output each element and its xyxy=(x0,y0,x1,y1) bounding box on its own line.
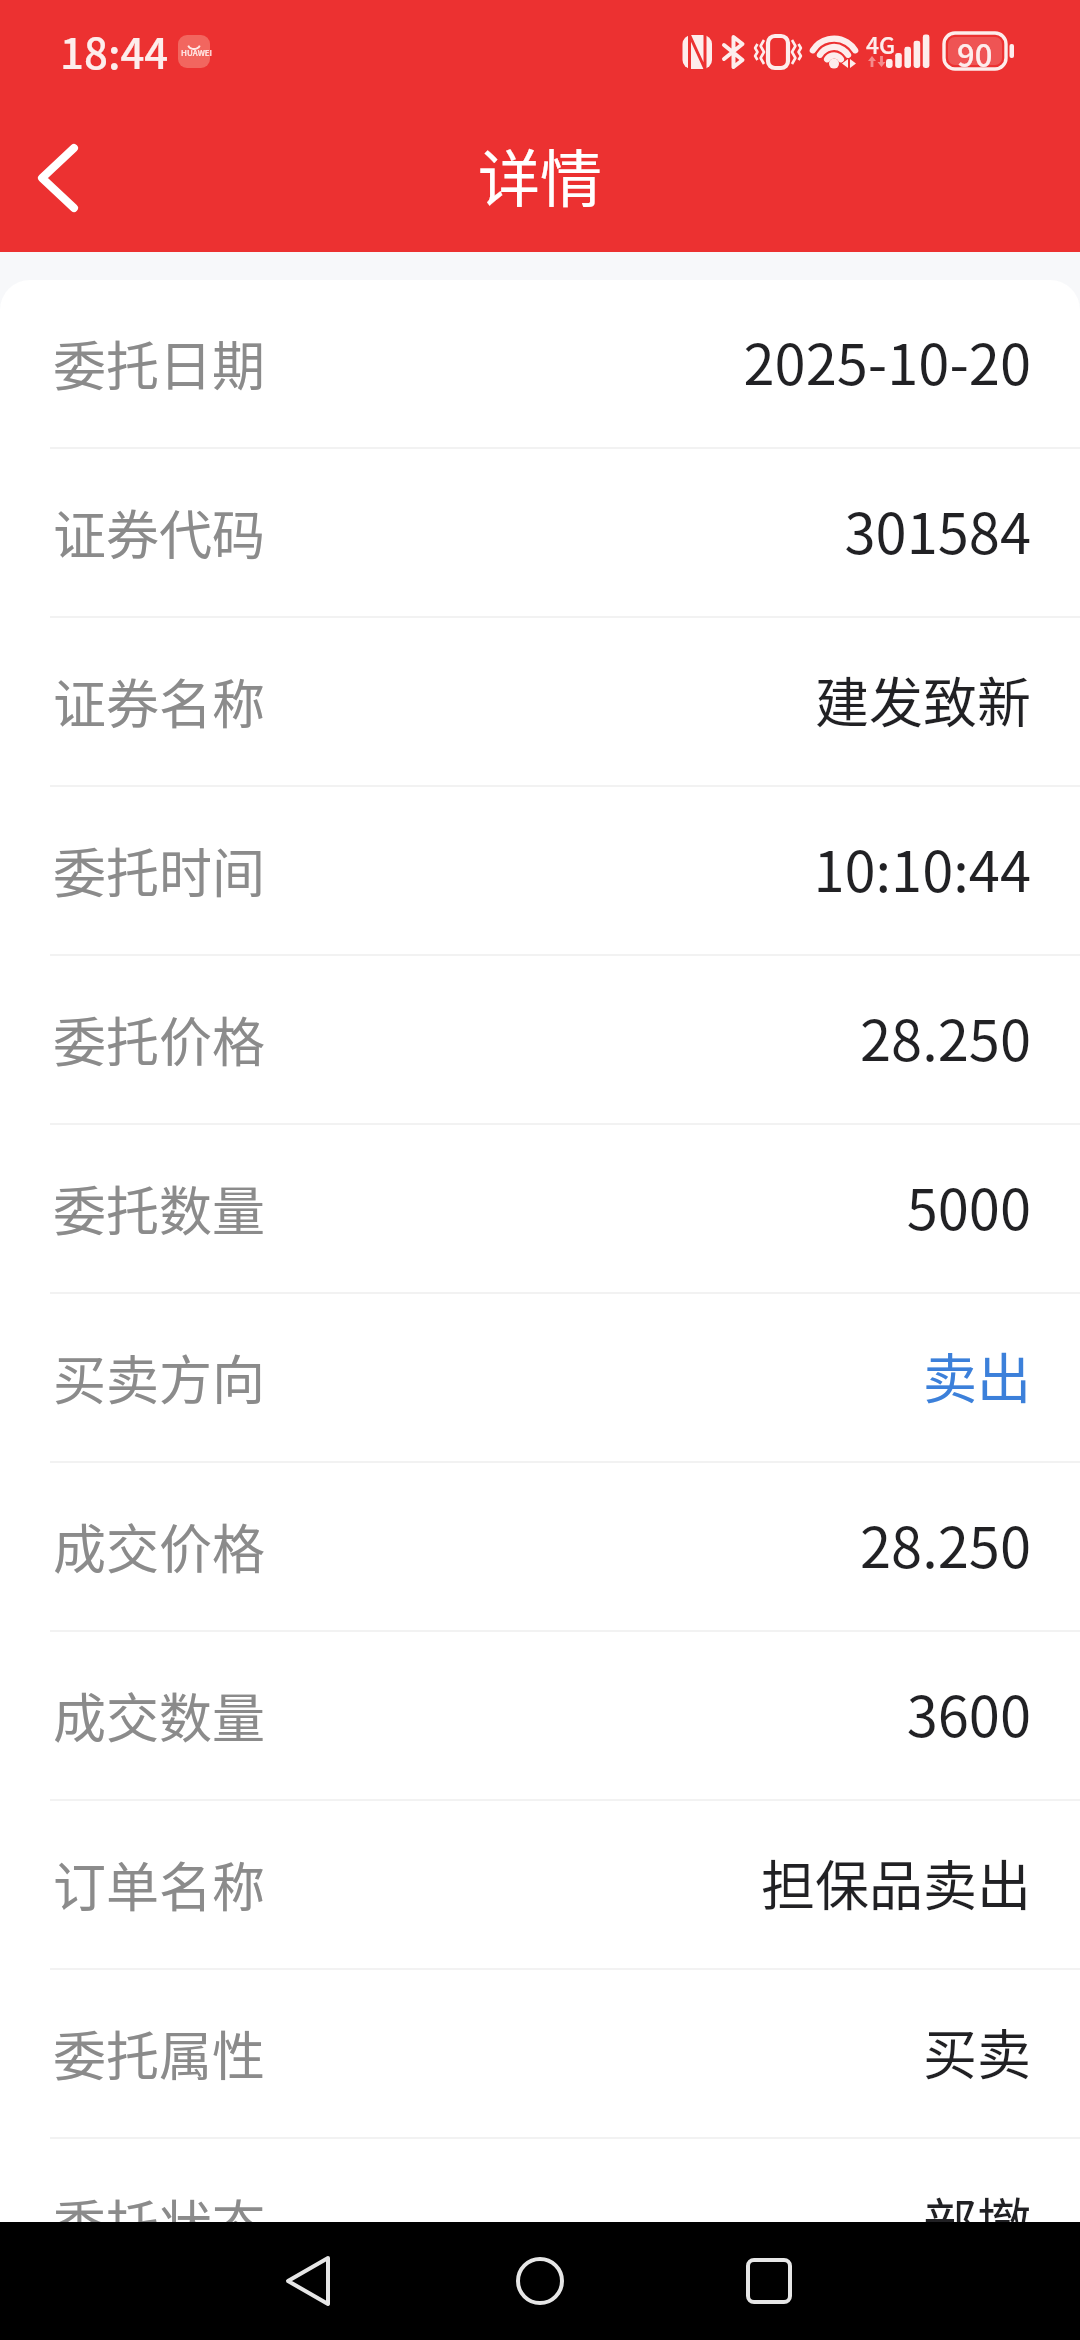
staticText: 买卖 xyxy=(923,2012,1031,2090)
staticText: 委托数量 xyxy=(53,1170,265,1247)
staticText: 4G xyxy=(866,27,896,60)
staticText: 成交价格 xyxy=(53,1508,265,1585)
staticText: 2025-10-20 xyxy=(743,320,1031,401)
button[interactable]: 订单名称 xyxy=(0,1801,1080,1970)
staticText: 委托日期 xyxy=(53,325,265,402)
staticText: 证券代码 xyxy=(53,494,265,571)
button[interactable]: 委托数量 xyxy=(0,1125,1080,1294)
button[interactable]: Home xyxy=(480,2222,600,2340)
button[interactable]: 证券名称 xyxy=(0,618,1080,787)
staticText: 买卖方向 xyxy=(53,1339,265,1416)
staticText: 部撤 xyxy=(923,2181,1031,2222)
button[interactable]: 成交价格 xyxy=(0,1463,1080,1632)
button[interactable]: 委托日期 xyxy=(0,280,1080,449)
button[interactable]: Recent apps xyxy=(709,2222,829,2340)
staticText: 担保品卖出 xyxy=(761,1843,1031,1921)
staticText: 301584 xyxy=(844,489,1031,570)
staticText: 订单名称 xyxy=(53,1846,265,1923)
staticText: 卖出 xyxy=(923,1336,1031,1414)
button[interactable]: 委托时间 xyxy=(0,787,1080,956)
staticText: 成交数量 xyxy=(53,1677,265,1754)
staticText: 10:10:44 xyxy=(813,827,1031,908)
staticText: 委托属性 xyxy=(53,2015,265,2092)
button[interactable]: 委托价格 xyxy=(0,956,1080,1125)
staticText: 28.250 xyxy=(860,996,1031,1077)
staticText: 委托状态 xyxy=(53,2184,265,2222)
staticText: 证券名称 xyxy=(53,663,265,740)
button[interactable]: 委托属性 xyxy=(0,1970,1080,2139)
staticText: 18:44 xyxy=(60,20,169,81)
button[interactable]: 证券代码 xyxy=(0,449,1080,618)
staticText: 建发致新 xyxy=(815,660,1031,738)
staticText: 90 xyxy=(957,31,993,76)
button[interactable]: Back xyxy=(248,2222,368,2340)
staticText: 5000 xyxy=(906,1165,1031,1246)
staticText: 3600 xyxy=(906,1672,1031,1753)
button[interactable]: 成交数量 xyxy=(0,1632,1080,1801)
staticText: HUAWEI xyxy=(181,47,213,59)
staticText: 详情 xyxy=(478,130,603,220)
staticText: 28.250 xyxy=(860,1503,1031,1584)
staticText: 委托价格 xyxy=(53,1001,265,1078)
staticText: 委托时间 xyxy=(53,832,265,909)
button[interactable]: 委托状态 xyxy=(0,2139,1080,2222)
button[interactable]: 买卖方向 xyxy=(0,1294,1080,1463)
button[interactable]: Back xyxy=(0,100,130,252)
